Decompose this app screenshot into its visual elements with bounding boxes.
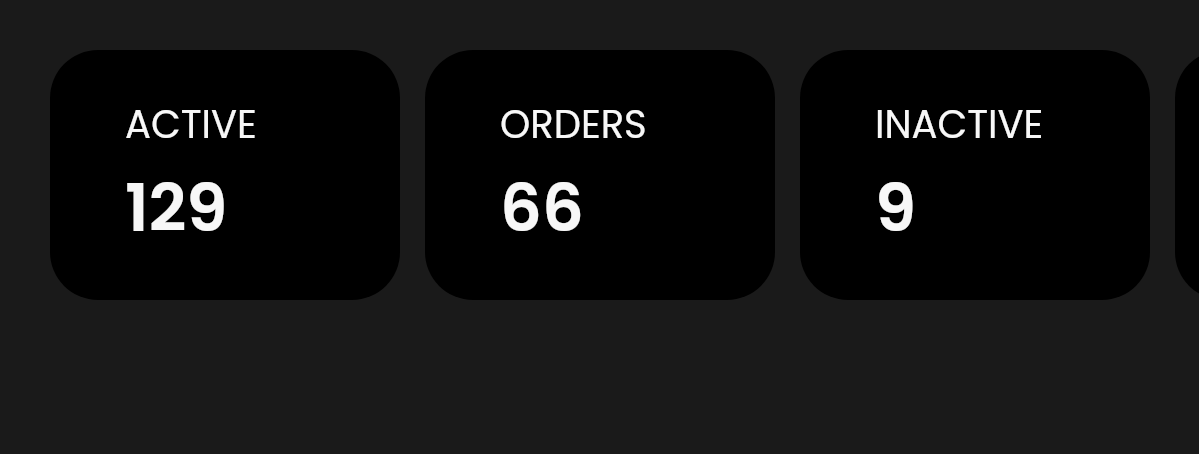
staticText: 66 xyxy=(500,162,584,254)
button[interactable]: INACTIVE xyxy=(800,50,1150,300)
staticText: ORDERS xyxy=(500,98,647,152)
staticText: 129 xyxy=(125,162,228,254)
staticText: INACTIVE xyxy=(875,98,1044,152)
button[interactable]: PENDING xyxy=(1175,50,1199,300)
button[interactable]: ORDERS xyxy=(425,50,775,300)
staticText: ACTIVE xyxy=(125,98,257,152)
staticText: 9 xyxy=(875,162,917,254)
button[interactable]: ACTIVE xyxy=(50,50,400,300)
